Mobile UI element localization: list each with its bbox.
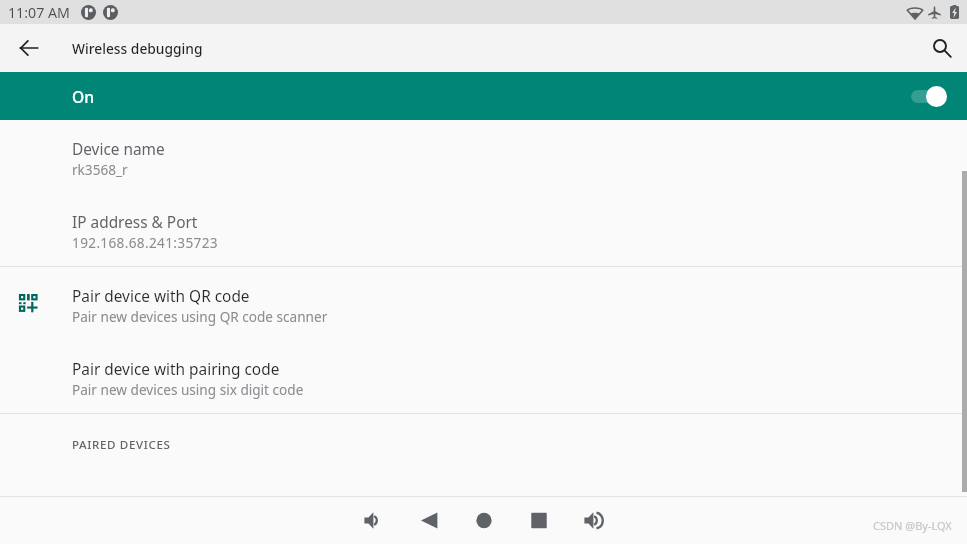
staticText: Wireless debugging [72,39,203,58]
staticText: Pair device with QR code [72,286,250,307]
button[interactable]: Pair device with QR code [0,267,967,340]
button[interactable]: Device name [0,120,967,193]
staticText: rk3568_r [72,160,128,179]
button[interactable]: Volume up [577,503,611,537]
staticText: Pair device with pairing code [72,359,280,380]
staticText: PAIRED DEVICES [72,437,171,453]
staticText: CSDN @By-LQX [873,518,952,533]
staticText: Device name [72,139,165,160]
button[interactable]: Back [11,30,47,66]
button[interactable]: On [0,72,967,120]
button[interactable]: Volume down [357,503,391,537]
button[interactable]: Recents [522,503,556,537]
staticText: Pair new devices using six digit code [72,380,304,399]
staticText: IP address & Port [72,212,198,233]
staticText: Pair new devices using QR code scanner [72,307,328,326]
staticText: 11:07 AM [8,3,70,22]
button[interactable]: Home [467,503,501,537]
staticText: On [72,86,95,107]
button[interactable]: Back [412,503,446,537]
button[interactable]: Pair device with pairing code [0,340,967,413]
button[interactable]: Wireless debugging toggle [911,86,947,107]
button[interactable]: IP address & Port [0,193,967,266]
button[interactable]: Search [922,28,962,68]
staticText: 192.168.68.241:35723 [72,233,218,252]
